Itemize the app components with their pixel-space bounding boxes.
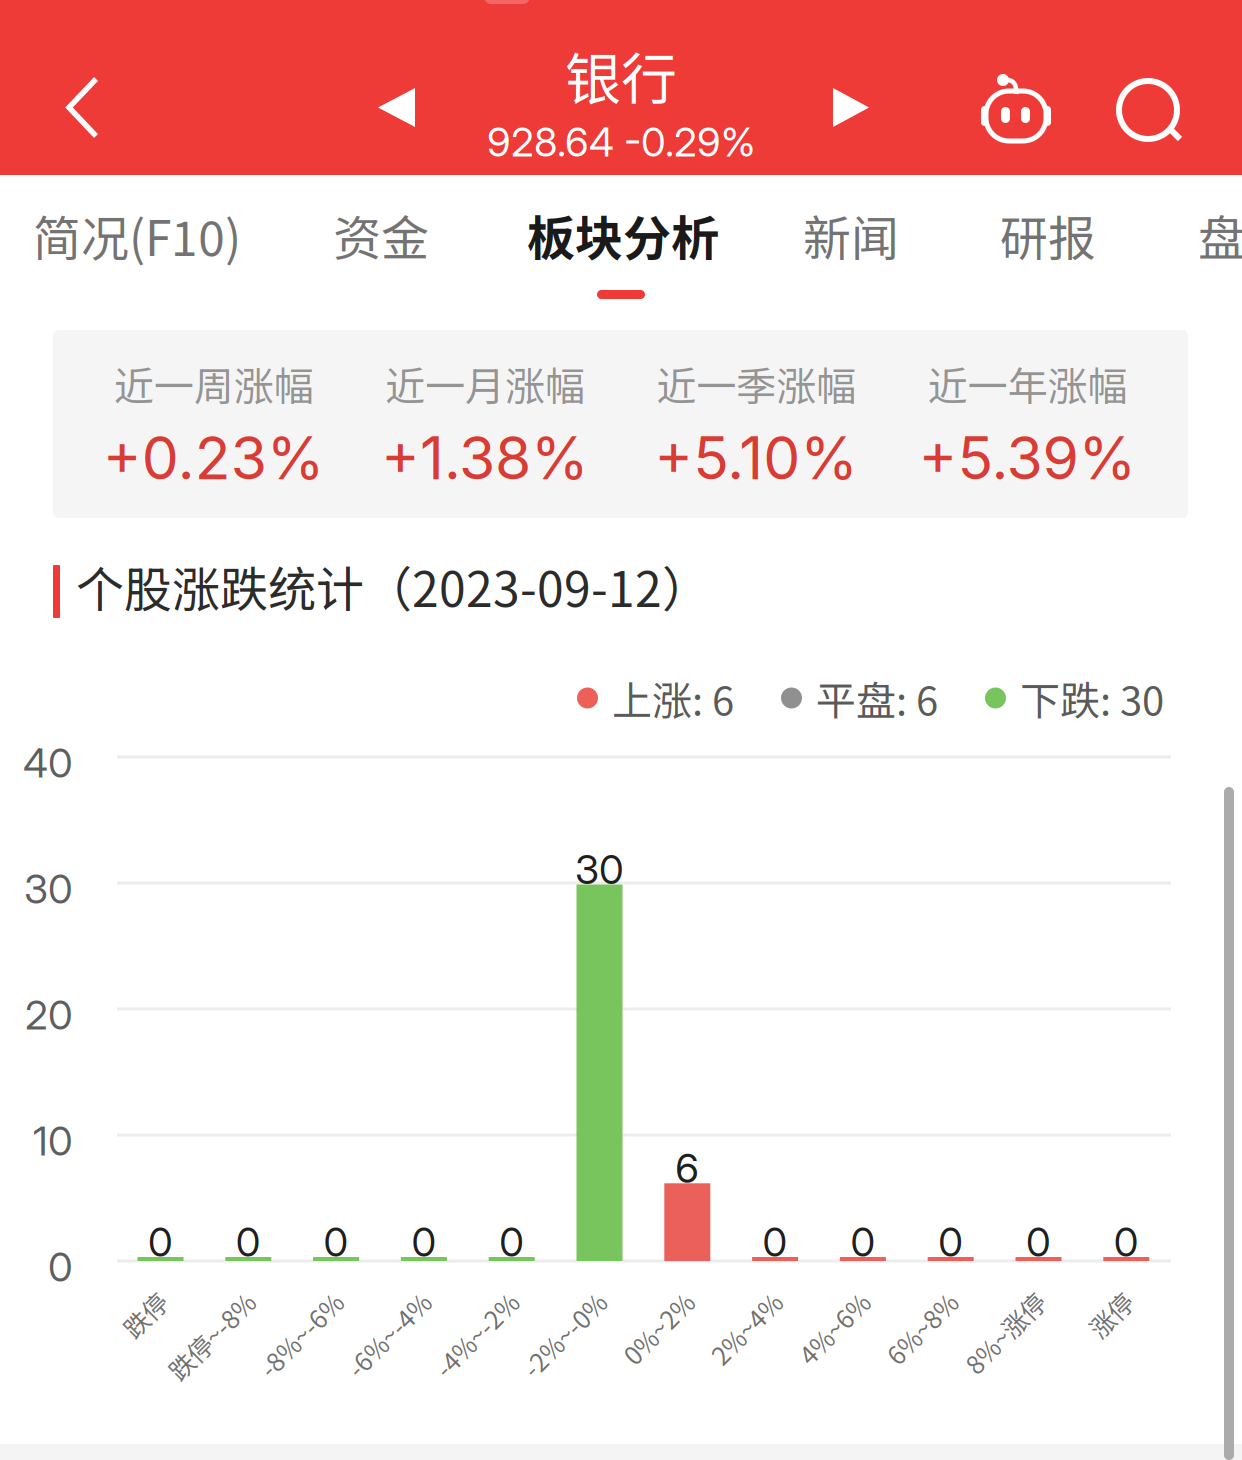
staticText: 30 [575,845,624,894]
staticText: +1.38% [381,422,589,493]
staticText: +0.23% [103,422,325,493]
button[interactable]: 研报 [1000,200,1242,270]
staticText: 跌停~-8% [140,1279,250,1315]
staticText: 6%~8% [865,1279,953,1315]
button[interactable]: 简况(F10) [33,200,333,270]
staticText: 上涨: 6 [612,669,734,727]
staticText: 4%~6% [777,1279,865,1315]
button[interactable]: 下一个 [803,60,899,156]
staticText: 0 [236,1218,261,1266]
staticText: 资金 [333,200,429,270]
staticText: 2%~4% [689,1279,777,1315]
staticText: 0 [48,1243,73,1291]
staticText: 0 [763,1218,788,1266]
staticText: 6 [675,1144,699,1192]
staticText: 0 [411,1218,436,1266]
staticText: 简况(F10) [33,200,241,270]
button[interactable]: 新闻 [803,200,1103,270]
staticText: 银行 [565,35,677,116]
staticText: 近一月涨幅 [385,354,585,412]
staticText: 0 [499,1218,524,1266]
button[interactable]: 搜索 [1100,62,1192,154]
staticText: 新闻 [803,200,899,270]
staticText: -6%~-4% [320,1279,426,1315]
staticText: 30 [24,865,73,913]
staticText: 0 [850,1218,875,1266]
staticText: 跌停 [112,1279,162,1315]
staticText: 近一周涨幅 [114,354,314,412]
staticText: 0%~2% [601,1279,689,1315]
staticText: 0 [324,1218,349,1266]
staticText: 0 [1114,1218,1139,1266]
staticText: 0 [1026,1218,1051,1266]
staticText: +5.10% [654,422,858,493]
staticText: -8%~-6% [232,1279,338,1315]
button[interactable]: 板块分析 [527,200,827,270]
staticText: 板块分析 [527,200,719,270]
button[interactable]: 盘 [1198,200,1242,270]
staticText: 10 [33,1117,73,1165]
button[interactable]: 返回 [46,56,119,159]
staticText: 20 [25,991,73,1039]
staticText: -2%~-0% [495,1279,601,1315]
staticText: 平盘: 6 [816,669,938,727]
staticText: +5.39% [918,422,1136,493]
staticText: 0 [148,1218,173,1266]
staticText: 近一年涨幅 [927,354,1127,412]
button[interactable]: 智能助手 [968,60,1068,160]
staticText: 涨停 [1078,1279,1128,1315]
staticText: 盘 [1198,200,1242,270]
staticText: 研报 [1000,200,1096,270]
staticText: -4%~-2% [408,1279,514,1315]
staticText: 8%~涨停 [939,1279,1040,1315]
staticText: 0 [938,1218,963,1266]
staticText: 下跌: 30 [1020,669,1164,727]
button[interactable]: 资金 [333,200,633,270]
staticText: 40 [23,739,73,787]
staticText: 个股涨跌统计（2023-09-12） [76,551,710,621]
staticText: 近一季涨幅 [656,354,856,412]
button[interactable]: 上一个 [348,60,444,156]
staticText: 928.64 -0.29% [487,118,755,166]
